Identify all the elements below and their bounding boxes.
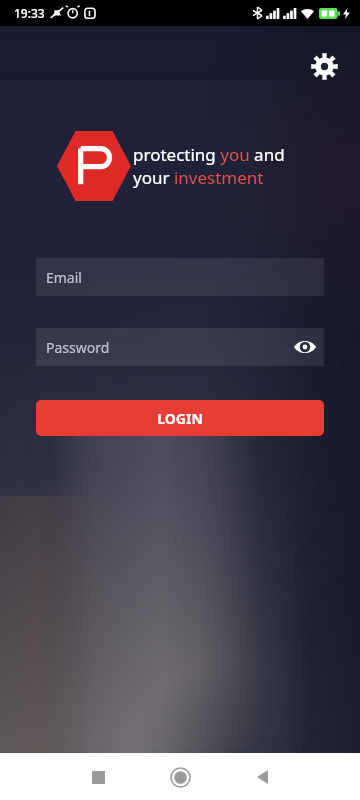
button[interactable]: Show password	[286, 328, 324, 366]
staticText: LOGIN	[157, 409, 203, 428]
button[interactable]: Home	[158, 755, 202, 799]
button[interactable]: Settings	[302, 44, 346, 88]
staticText: 19:33	[14, 5, 45, 21]
button[interactable]: Back	[240, 755, 284, 799]
staticText: Email	[46, 268, 82, 287]
button[interactable]: Password	[36, 328, 324, 366]
staticText: protecting you and your investment	[133, 143, 285, 189]
button[interactable]: Recent apps	[76, 755, 120, 799]
button[interactable]: Email	[36, 258, 324, 296]
staticText: Password	[46, 338, 110, 357]
button[interactable]: LOGIN	[36, 400, 324, 436]
